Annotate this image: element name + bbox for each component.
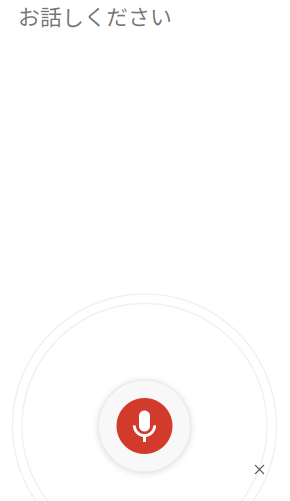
button[interactable]: Record (98, 380, 190, 472)
button[interactable]: Close (245, 455, 273, 483)
staticText: お話しください (18, 0, 172, 32)
